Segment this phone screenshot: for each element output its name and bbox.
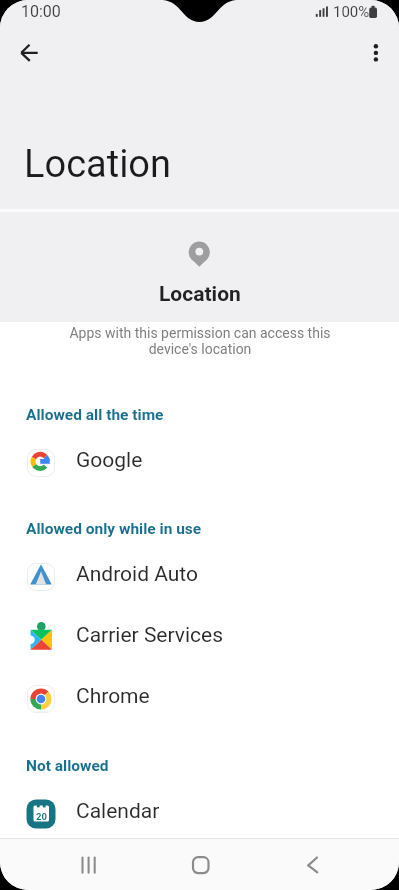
- button[interactable]: [290, 845, 334, 887]
- staticText: Calendar: [76, 799, 160, 824]
- staticText: Google: [76, 448, 143, 473]
- staticText: Apps with this permission can access thi…: [69, 325, 331, 357]
- button[interactable]: [66, 845, 116, 887]
- staticText: Location: [159, 282, 241, 307]
- staticText: Allowed only while in use: [26, 520, 202, 538]
- button[interactable]: Android Auto: [0, 546, 399, 607]
- button[interactable]: 20: [0, 783, 399, 844]
- button[interactable]: Google: [0, 432, 399, 493]
- staticText: Android Auto: [76, 562, 198, 587]
- staticText: 10:00: [21, 2, 61, 21]
- staticText: Location: [24, 142, 172, 187]
- staticText: 100%: [333, 3, 370, 21]
- staticText: Chrome: [76, 684, 150, 709]
- button[interactable]: Chrome: [0, 668, 399, 729]
- staticText: Allowed all the time: [26, 406, 164, 424]
- staticText: 20: [36, 811, 47, 822]
- button[interactable]: [178, 845, 222, 887]
- staticText: Carrier Services: [76, 623, 224, 648]
- staticText: Not allowed: [26, 757, 109, 775]
- button[interactable]: [10, 36, 52, 70]
- button[interactable]: [360, 38, 392, 68]
- button[interactable]: Carrier Services: [0, 607, 399, 668]
